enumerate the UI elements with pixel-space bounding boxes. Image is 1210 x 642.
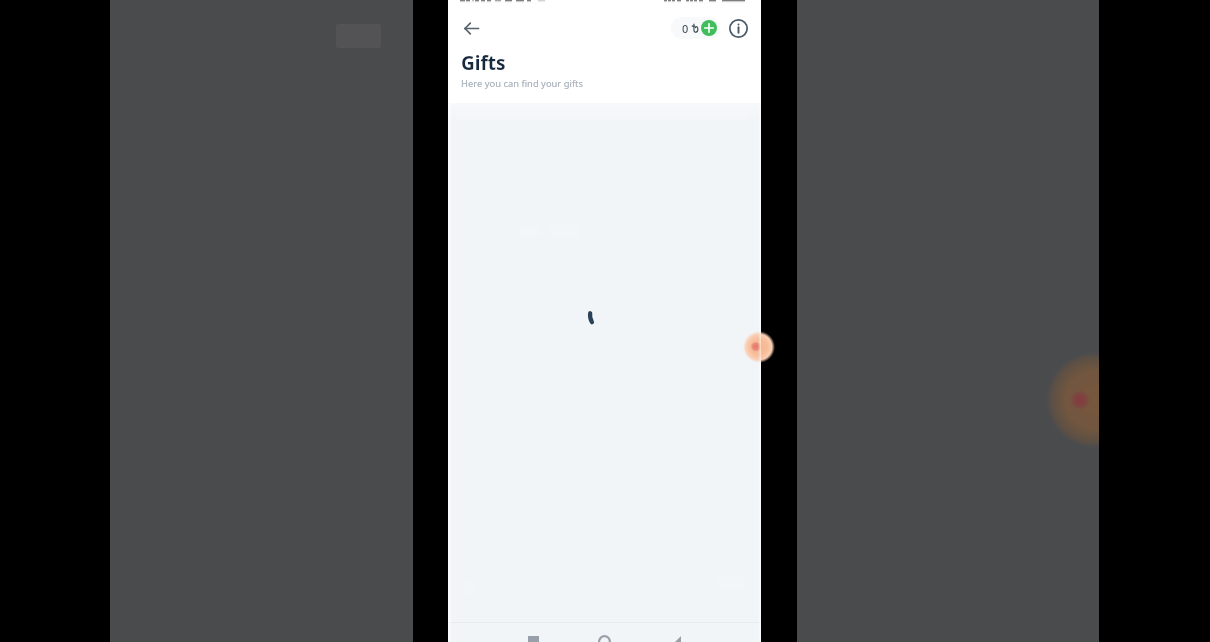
staticText: Gifts <box>461 50 506 76</box>
button[interactable]: Back <box>459 16 483 40</box>
button[interactable]: Home <box>598 635 611 642</box>
staticText: Here you can find your gifts <box>461 77 584 90</box>
button[interactable]: Back <box>670 636 681 642</box>
button[interactable]: Information <box>727 17 749 39</box>
button[interactable]: Add gift <box>743 331 775 363</box>
staticText: 0 <box>682 21 689 36</box>
button[interactable]: 0 <box>671 17 720 39</box>
